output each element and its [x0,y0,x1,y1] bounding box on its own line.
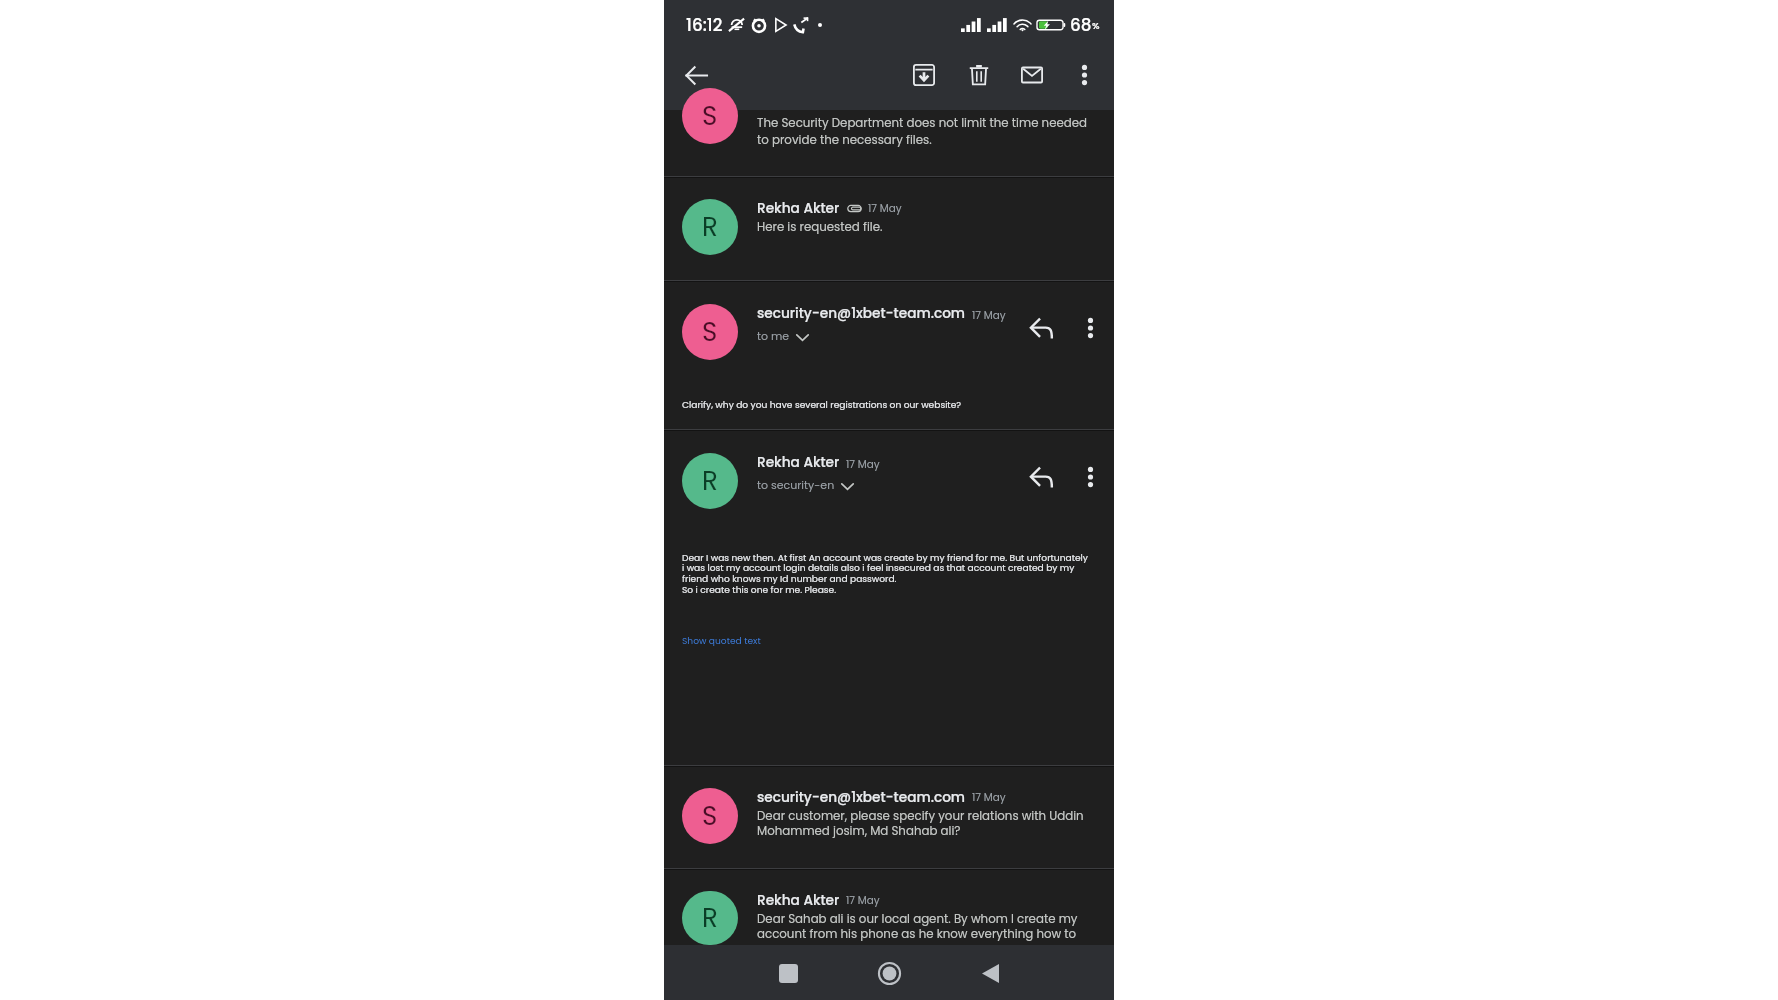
staticText: 17 May [972,308,1006,323]
staticText: Rekha Akter [757,453,840,472]
button[interactable]: R [664,870,1114,945]
button[interactable]: to me [757,328,809,343]
staticText: Show quoted text [682,634,761,647]
staticText: 17 May [846,457,880,472]
staticText: Dear I was new then. At first An account… [682,551,1088,596]
button[interactable]: More options [1064,55,1104,95]
staticText: Dear Sahab ali is our local agent. By wh… [757,911,1078,942]
button[interactable]: to security-en [757,477,854,492]
staticText: S [702,98,718,134]
button[interactable]: R [664,178,1114,280]
button[interactable]: S [664,767,1114,868]
staticText: 17 May [868,201,902,216]
staticText: 17 May [972,790,1006,805]
staticText: Rekha Akter [757,891,840,910]
button[interactable]: Back [674,53,718,97]
button[interactable]: Archive [902,53,946,97]
staticText: 68 [1070,13,1092,37]
button[interactable]: Reply [1023,310,1059,346]
staticText: to security-en [757,477,835,492]
staticText: R [702,463,718,499]
button[interactable]: Reply [1023,459,1059,495]
button[interactable]: Back [966,949,1014,997]
staticText: Here is requested file. [757,219,883,236]
staticText: R [702,209,718,245]
button[interactable]: Show quoted text [682,634,761,647]
staticText: S [702,798,718,834]
staticText: Rekha Akter [757,199,840,218]
button[interactable]: S [664,110,1114,176]
button[interactable]: Delete [957,53,1001,97]
button[interactable]: More options [1074,461,1106,493]
staticText: Dear customer, please specify your relat… [757,808,1084,839]
staticText: S [702,314,718,350]
button[interactable]: Mark as unread [1010,53,1054,97]
staticText: % [1092,19,1100,32]
staticText: security-en@1xbet-team.com [757,304,966,323]
staticText: Clarify, why do you have several registr… [682,398,962,411]
staticText: 17 May [846,893,880,908]
staticText: 16:12 [686,13,723,37]
staticText: The Security Department does not limit t… [757,115,1088,148]
staticText: to me [757,328,790,343]
button[interactable]: Home [865,949,913,997]
staticText: security-en@1xbet-team.com [757,788,966,807]
staticText: R [702,900,718,936]
button[interactable]: Recent apps [764,949,812,997]
button[interactable]: More options [1074,312,1106,344]
